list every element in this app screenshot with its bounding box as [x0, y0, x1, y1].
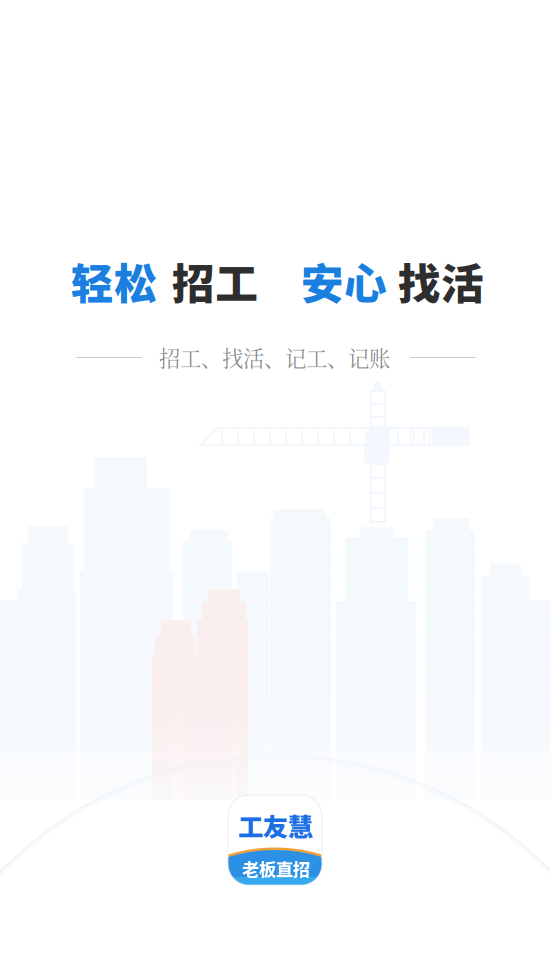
button[interactable]: 工友慧 老板直招: [228, 795, 322, 885]
staticText: 招工、找活、记工、记账: [159, 342, 390, 373]
staticText: 找活: [398, 250, 484, 312]
staticText: 工友慧: [238, 807, 313, 844]
staticText: 老板直招: [242, 856, 310, 881]
staticText: 招工: [172, 250, 258, 312]
staticText: 轻松: [71, 250, 157, 312]
staticText: 安心: [301, 250, 387, 312]
